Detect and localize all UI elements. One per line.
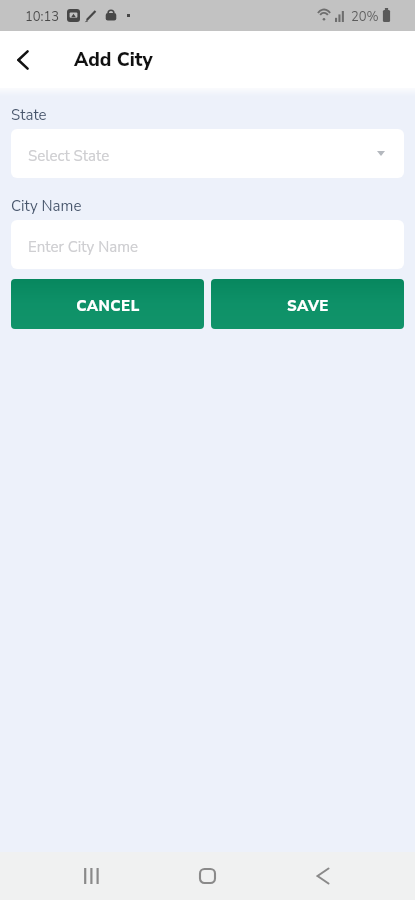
button[interactable]: Recent apps — [68, 852, 116, 900]
button[interactable]: Back — [3, 40, 43, 80]
button[interactable]: CANCEL — [11, 279, 204, 329]
button[interactable]: Enter City Name — [11, 220, 404, 269]
button[interactable]: Back — [299, 852, 347, 900]
button[interactable]: Home — [184, 852, 232, 900]
staticText: Enter City Name — [28, 237, 139, 257]
staticText: CANCEL — [76, 296, 140, 316]
staticText: 10:13 — [25, 8, 60, 26]
staticText: 20% — [351, 8, 379, 26]
staticText: City Name — [11, 196, 82, 216]
button[interactable]: SAVE — [211, 279, 404, 329]
staticText: Add City — [74, 47, 153, 73]
staticText: State — [11, 105, 47, 125]
button[interactable]: Select State — [11, 129, 404, 178]
staticText: Select State — [28, 146, 110, 166]
staticText: SAVE — [287, 296, 329, 316]
